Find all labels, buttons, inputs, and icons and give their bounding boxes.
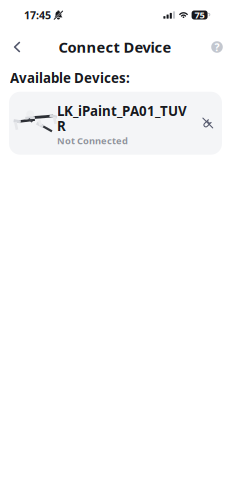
staticText: 75: [195, 9, 205, 21]
staticText: ?: [214, 40, 219, 54]
staticText: 17:45: [24, 8, 51, 22]
staticText: Available Devices:: [10, 69, 130, 87]
staticText: Not Connected: [57, 134, 128, 147]
button[interactable]: Back: [6, 36, 28, 58]
staticText: LK_iPaint_PA01_TUV: [57, 102, 187, 120]
staticText: Connect Device: [58, 37, 171, 57]
button[interactable]: LK_iPaint_PA01_TUV: [9, 92, 222, 155]
button[interactable]: Help: [206, 36, 228, 58]
staticText: R: [57, 117, 66, 135]
